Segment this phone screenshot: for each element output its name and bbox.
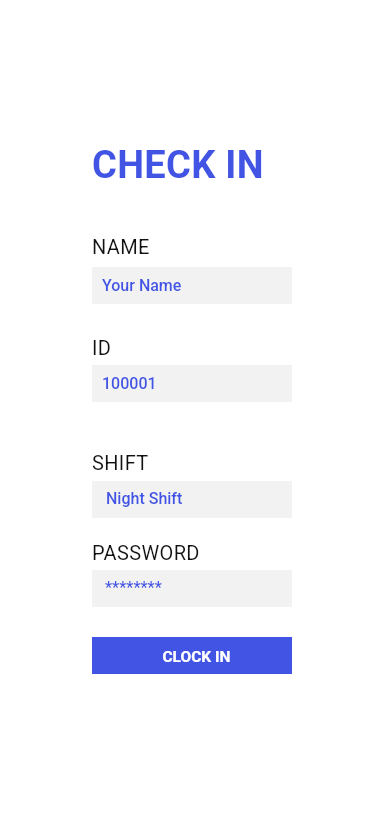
staticText: ID (92, 336, 112, 359)
staticText: Your Name (102, 276, 182, 295)
staticText: PASSWORD (92, 541, 200, 564)
staticText: ******** (105, 578, 162, 597)
button[interactable]: ID (92, 365, 292, 402)
staticText: CLOCK IN (162, 648, 231, 666)
button[interactable]: CLOCK IN (92, 637, 292, 674)
button[interactable]: Shift (92, 481, 292, 518)
staticText: 100001 (102, 374, 157, 393)
button[interactable]: Name (92, 267, 292, 304)
staticText: SHIFT (92, 451, 149, 474)
button[interactable]: Password (92, 570, 292, 607)
staticText: CHECK IN (92, 143, 264, 188)
staticText: Night Shift (106, 489, 183, 508)
staticText: NAME (92, 235, 150, 258)
